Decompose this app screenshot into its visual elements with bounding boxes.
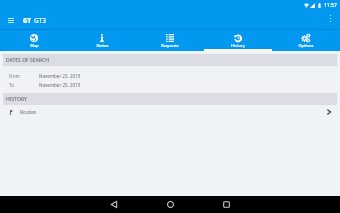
button[interactable]: Back bbox=[95, 196, 133, 213]
button[interactable]: Options bbox=[272, 30, 340, 51]
button[interactable]: Recent apps bbox=[207, 196, 245, 213]
button[interactable]: From bbox=[0, 73, 340, 78]
staticText: To bbox=[9, 82, 14, 87]
staticText: GT3 bbox=[34, 16, 47, 25]
button[interactable]: Status bbox=[68, 30, 136, 51]
staticText: Routes bbox=[20, 109, 37, 116]
button[interactable]: Home bbox=[151, 196, 189, 213]
staticText: Map bbox=[30, 43, 39, 48]
staticText: November 23, 2015 bbox=[39, 73, 81, 78]
staticText: Requests bbox=[161, 43, 179, 48]
button[interactable]: Routes bbox=[0, 105, 340, 119]
button[interactable]: More options bbox=[324, 12, 337, 25]
button[interactable]: To bbox=[0, 82, 340, 87]
staticText: DATES OF SEARCH bbox=[6, 57, 49, 64]
staticText: Options bbox=[298, 43, 314, 48]
staticText: From bbox=[9, 73, 21, 78]
button[interactable]: History bbox=[204, 30, 272, 51]
staticText: History bbox=[231, 43, 245, 48]
staticText: Status bbox=[96, 43, 109, 48]
button[interactable]: Map bbox=[0, 30, 68, 51]
staticText: HISTORY bbox=[6, 96, 27, 103]
staticText: 11:57 bbox=[324, 2, 337, 9]
button[interactable]: Requests bbox=[136, 30, 204, 51]
staticText: GT bbox=[23, 17, 31, 25]
staticText: November 25, 2015 bbox=[39, 82, 81, 87]
button[interactable]: Open navigation drawer bbox=[4, 14, 17, 27]
